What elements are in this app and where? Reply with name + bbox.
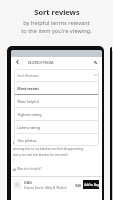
staticText: was a normal size blanket for me and it [13, 153, 69, 157]
staticText: by helpful terms relevant [23, 19, 90, 27]
staticText: Lowest rating [17, 125, 40, 130]
button[interactable]: Highest rating [17, 108, 99, 120]
staticText: $40 [75, 183, 81, 187]
staticText: It's adorable! I have this set and I've … [13, 141, 91, 145]
staticText: Has photos [17, 138, 37, 143]
button[interactable]: Most helpful [17, 95, 99, 107]
button[interactable]: Back [13, 57, 22, 67]
staticText: wearing this to my blanket size Knit dis… [13, 147, 93, 151]
staticText: Most recent [17, 86, 39, 91]
staticText: Was this helpful? [17, 167, 42, 171]
button[interactable]: Add to Bag [83, 180, 99, 189]
staticText: Add to Bag [84, 183, 99, 187]
button[interactable]: Most recent [17, 82, 99, 94]
staticText: UGG [24, 180, 32, 185]
staticText: Sort reviews [34, 7, 80, 17]
staticText: Highest rating [17, 112, 42, 117]
button[interactable]: Lowest rating [17, 121, 99, 133]
staticText: ! [13, 159, 14, 163]
staticText: NORDSTROM [28, 60, 54, 65]
staticText: Most helpful [17, 99, 39, 104]
button[interactable]: Has photos [17, 134, 99, 146]
staticText: to the item you're viewing. [21, 27, 92, 35]
staticText: Sort Reviews [17, 73, 39, 78]
button[interactable]: Search [91, 57, 100, 67]
staticText: Dakota Bootie (Baby & Walker) [24, 186, 67, 190]
button[interactable]: Was this helpful? [13, 167, 42, 171]
button[interactable]: Sort Reviews [17, 69, 97, 81]
